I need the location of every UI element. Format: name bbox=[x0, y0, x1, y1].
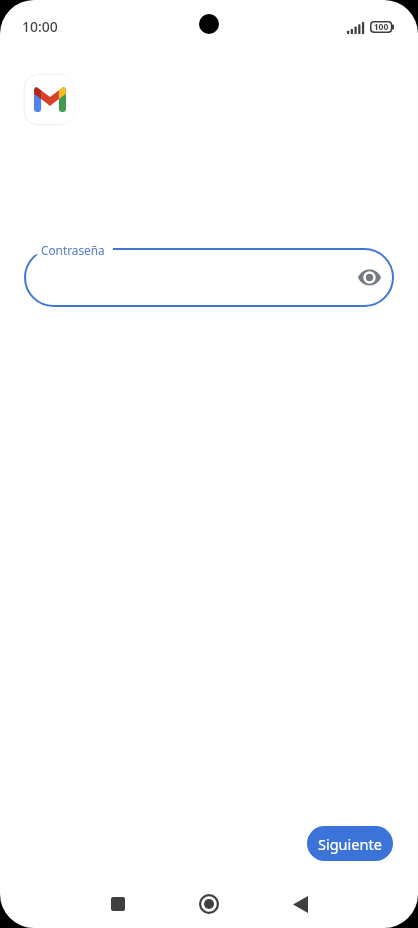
button[interactable]: Home bbox=[187, 882, 231, 926]
button[interactable]: Recents bbox=[96, 882, 140, 926]
button[interactable]: Siguiente bbox=[307, 826, 393, 861]
staticText: Contraseña bbox=[41, 242, 105, 258]
staticText: 100 bbox=[370, 21, 392, 33]
button[interactable]: Back bbox=[278, 882, 322, 926]
staticText: 10:00 bbox=[22, 17, 58, 36]
button[interactable]: Mostrar contraseña bbox=[352, 260, 386, 294]
staticText: Siguiente bbox=[318, 834, 382, 854]
